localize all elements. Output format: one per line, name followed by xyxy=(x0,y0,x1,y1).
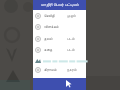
staticText: நகரம் xyxy=(67,68,77,72)
staticText: முதல் xyxy=(67,14,76,18)
staticText: தவல் xyxy=(44,37,53,41)
button[interactable]: கதை xyxy=(33,46,86,54)
staticText: படம் xyxy=(67,48,75,52)
button[interactable]: செயிதி xyxy=(33,12,86,20)
staticText: விளக்கம் xyxy=(44,25,59,29)
staticText: மாதிரி பெயர் பட்டியல் xyxy=(41,2,79,8)
button[interactable]: கிராமம் xyxy=(33,66,86,74)
staticText: செயிதி xyxy=(44,14,55,18)
other: Chart xyxy=(35,58,41,64)
button[interactable]: Chart xyxy=(33,57,86,65)
button[interactable] xyxy=(33,78,86,90)
button[interactable]: விளக்கம் xyxy=(33,23,86,31)
staticText: கிராமம் xyxy=(44,68,57,72)
button[interactable]: தவல் xyxy=(33,35,86,43)
staticText: படம் xyxy=(67,37,75,41)
button[interactable]: மாதிரி பெயர் பட்டியல் xyxy=(33,0,86,10)
staticText: கதை xyxy=(44,48,53,52)
